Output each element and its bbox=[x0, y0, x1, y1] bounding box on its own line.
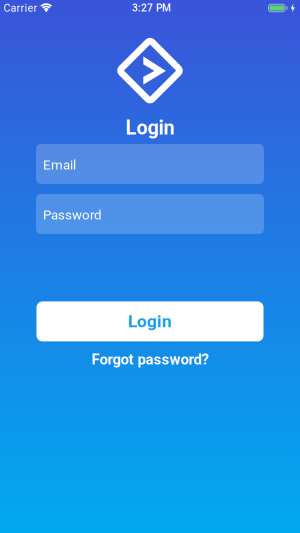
button[interactable]: Forgot password? bbox=[91, 347, 208, 371]
staticText: Forgot password? bbox=[91, 351, 208, 368]
staticText: Email bbox=[43, 157, 76, 173]
staticText: Password bbox=[43, 207, 102, 223]
staticText: Carrier bbox=[3, 2, 37, 14]
staticText: Login bbox=[125, 116, 174, 139]
button[interactable]: Login bbox=[36, 301, 263, 341]
button[interactable]: Password bbox=[36, 194, 264, 234]
button[interactable]: Email bbox=[36, 144, 264, 184]
staticText: 3:27 PM bbox=[132, 2, 171, 14]
staticText: Login bbox=[128, 311, 172, 332]
